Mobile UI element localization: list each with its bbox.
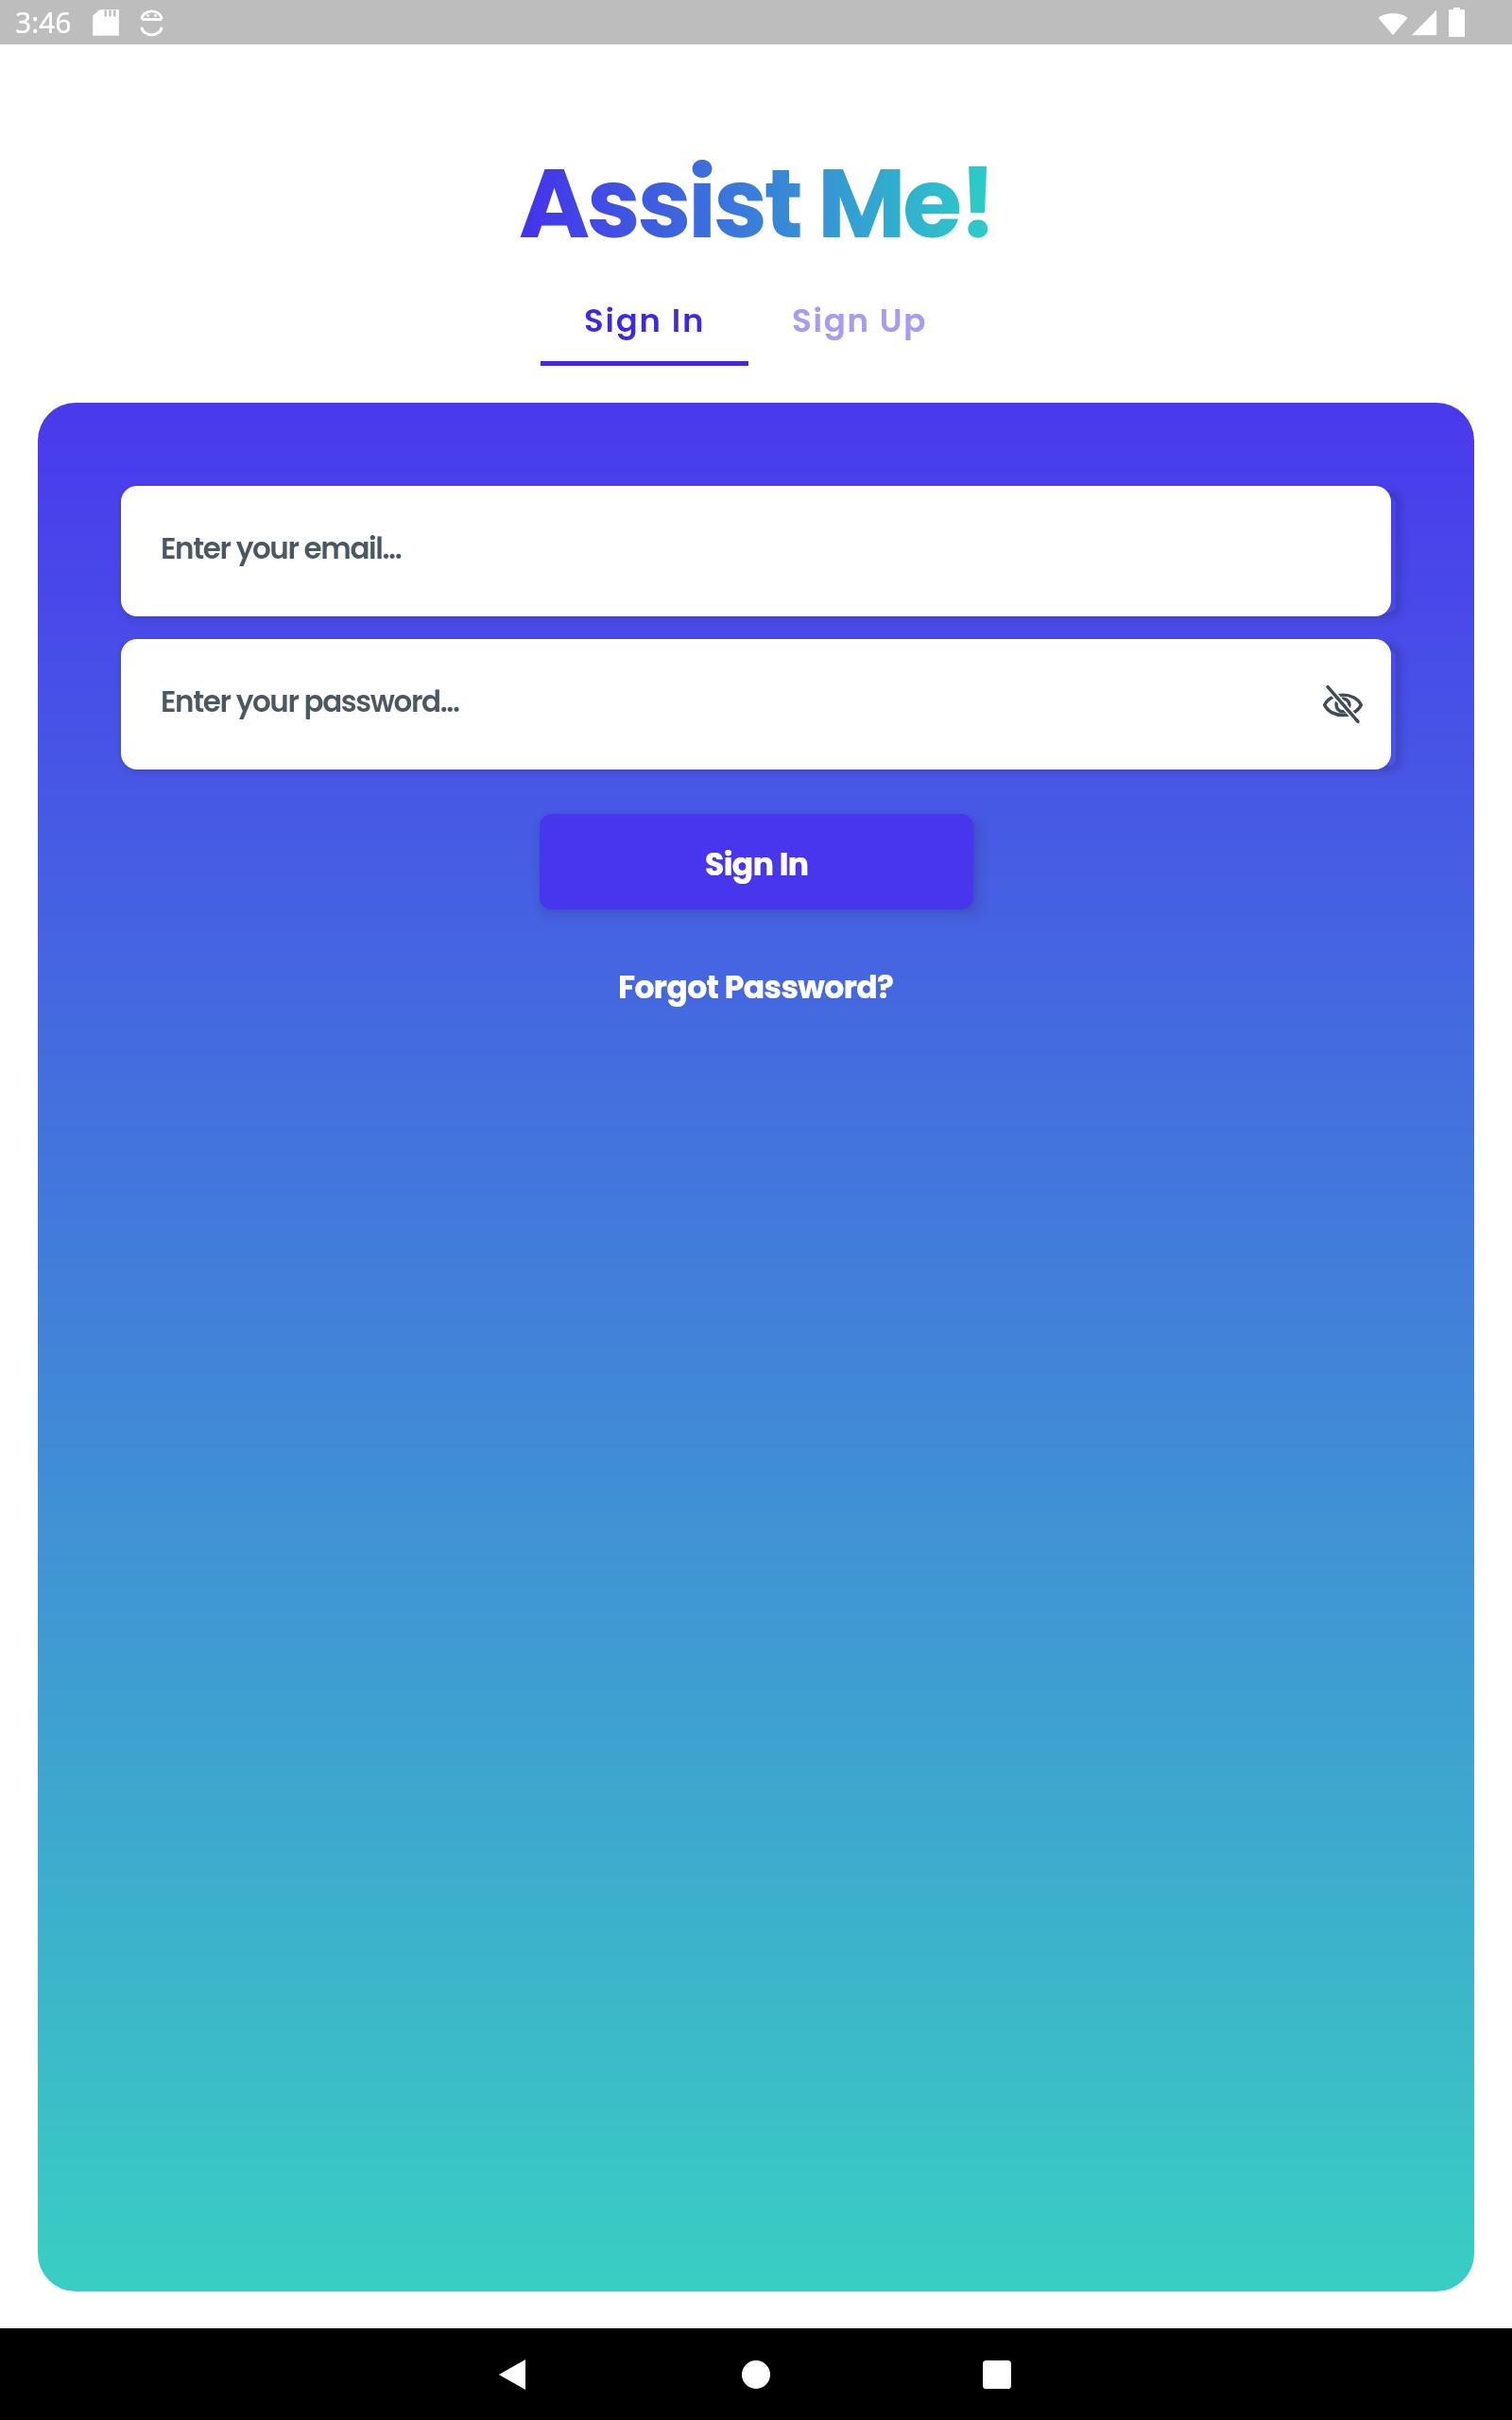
button[interactable]: Enter your password... [121, 639, 1391, 769]
button[interactable]: Toggle password visibility [1316, 678, 1369, 731]
button[interactable]: Sign Up [756, 298, 964, 366]
button[interactable]: Enter your email... [121, 486, 1391, 616]
button[interactable]: Back [474, 2337, 550, 2412]
staticText: Enter your password... [161, 681, 459, 721]
button[interactable]: Sign In [540, 814, 973, 909]
button[interactable]: Forgot Password? [599, 958, 913, 1016]
staticText: Assist Me! [519, 136, 994, 271]
staticText: Sign Up [792, 298, 928, 343]
button[interactable]: Sign In [541, 298, 748, 366]
staticText: Enter your email... [161, 527, 402, 568]
staticText: Sign In [584, 298, 706, 343]
staticText: Forgot Password? [618, 965, 894, 1009]
button[interactable]: Home [718, 2337, 794, 2412]
button[interactable]: Recents [959, 2337, 1035, 2412]
staticText: Sign In [705, 842, 809, 886]
staticText: 3:46 [15, 3, 72, 42]
